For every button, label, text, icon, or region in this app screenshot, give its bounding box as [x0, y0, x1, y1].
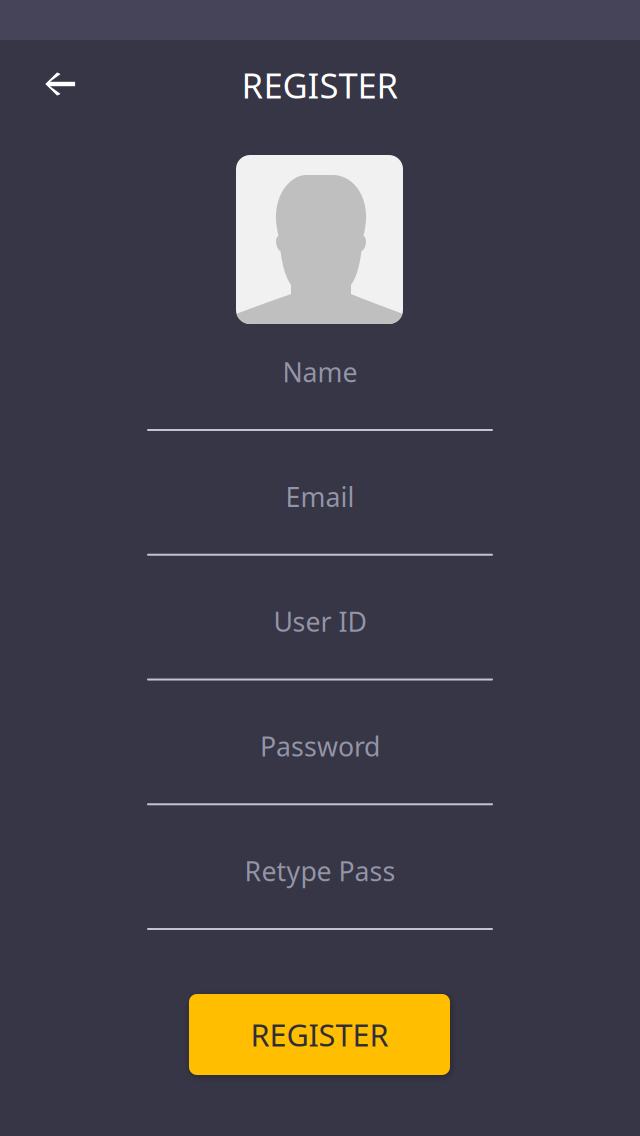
button[interactable]: Back — [22, 54, 98, 114]
staticText: User ID — [273, 604, 366, 639]
button[interactable]: Email — [147, 482, 493, 582]
button[interactable]: Password — [147, 731, 493, 831]
staticText: REGISTER — [250, 1014, 388, 1055]
staticText: Email — [285, 479, 354, 514]
staticText: Password — [260, 728, 380, 764]
button[interactable]: Name — [147, 357, 493, 457]
staticText: Retype Pass — [244, 853, 395, 889]
button[interactable]: User ID — [147, 606, 493, 706]
button[interactable]: Choose profile photo — [236, 155, 403, 324]
staticText: Name — [282, 354, 357, 390]
button[interactable]: REGISTER — [189, 994, 450, 1075]
button[interactable]: Retype Pass — [147, 856, 493, 956]
staticText: REGISTER — [241, 62, 398, 108]
